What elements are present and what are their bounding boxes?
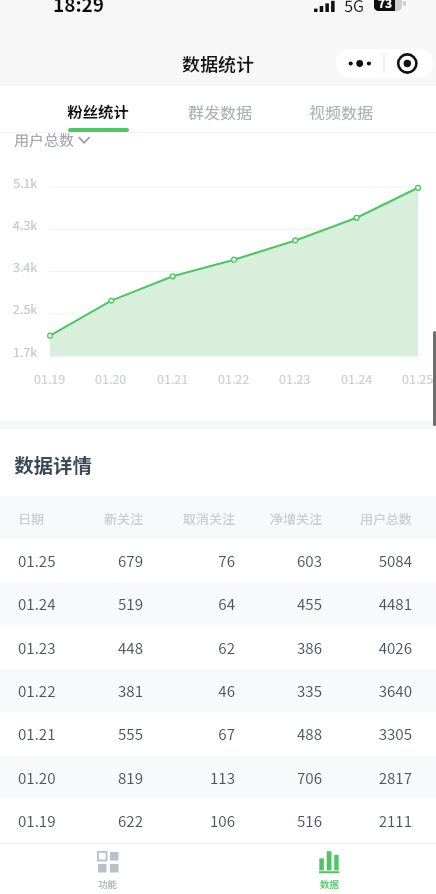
staticText: 448 [43,637,143,659]
staticText: 视频数据 [309,100,374,123]
staticText: 67 [135,723,235,745]
button[interactable]: 粉丝统计 [42,88,154,132]
staticText: 113 [135,767,235,789]
staticText: 数据详情 [14,450,93,478]
staticText: 4026 [312,637,412,659]
staticText: 335 [222,680,322,702]
staticText: 01.24 [18,593,56,615]
button[interactable] [0,669,436,712]
staticText: 386 [222,637,322,659]
staticText: 519 [43,593,143,615]
staticText: 62 [135,637,235,659]
staticText: 01.21 [18,723,56,745]
staticText: 706 [222,767,322,789]
staticText: 01.21 [157,369,189,385]
staticText: 01.19 [34,369,66,385]
staticText: 01.25 [402,369,434,385]
button[interactable]: 群发数据 [164,88,276,132]
button[interactable] [0,799,436,842]
staticText: 01.25 [18,550,56,572]
staticText: 819 [43,767,143,789]
staticText: 2817 [312,767,412,789]
staticText: 01.23 [18,637,56,659]
staticText: 取消关注 [135,509,235,528]
button[interactable]: 数据 [218,843,436,894]
button[interactable]: 功能 [0,843,218,894]
button[interactable] [0,626,436,669]
staticText: 净增关注 [222,509,322,528]
staticText: 73 [378,0,393,9]
staticText: 1.7k [13,342,38,360]
staticText: 5G [344,0,364,16]
staticText: 3640 [312,680,412,702]
staticText: 64 [135,593,235,615]
staticText: 46 [135,680,235,702]
staticText: 18:29 [53,0,105,18]
staticText: 数据统计 [182,50,254,76]
staticText: 01.24 [341,369,373,385]
staticText: 群发数据 [188,100,253,123]
staticText: 106 [135,810,235,832]
staticText: 3305 [312,723,412,745]
staticText: 功能 [98,877,118,891]
staticText: 01.20 [18,767,56,789]
staticText: 01.22 [18,680,56,702]
staticText: 4481 [312,593,412,615]
staticText: 用户总数 [14,129,75,149]
staticText: 622 [43,810,143,832]
staticText: 5084 [312,550,412,572]
staticText: 76 [135,550,235,572]
staticText: 603 [222,550,322,572]
button[interactable] [0,582,436,625]
staticText: 数据 [320,877,340,891]
staticText: 4.3k [13,215,38,233]
staticText: 3.4k [13,257,38,275]
staticText: 679 [43,550,143,572]
button[interactable] [0,712,436,755]
staticText: 01.23 [279,369,311,385]
staticText: 381 [43,680,143,702]
staticText: 488 [222,723,322,745]
button[interactable]: More options and close [336,49,433,78]
staticText: 2.5k [13,299,38,317]
staticText: 用户总数 [312,509,412,528]
button[interactable] [0,756,436,799]
staticText: 01.20 [95,369,127,385]
staticText: 2111 [312,810,412,832]
staticText: 555 [43,723,143,745]
staticText: 5.1k [13,173,38,191]
button[interactable]: 视频数据 [285,88,397,132]
staticText: 01.22 [218,369,250,385]
staticText: 新关注 [43,509,143,528]
button[interactable] [0,539,436,582]
staticText: 455 [222,593,322,615]
staticText: 粉丝统计 [67,100,130,122]
button[interactable]: 用户总数 [14,129,91,149]
staticText: 01.19 [18,810,56,832]
staticText: 日期 [18,509,45,528]
staticText: 516 [222,810,322,832]
